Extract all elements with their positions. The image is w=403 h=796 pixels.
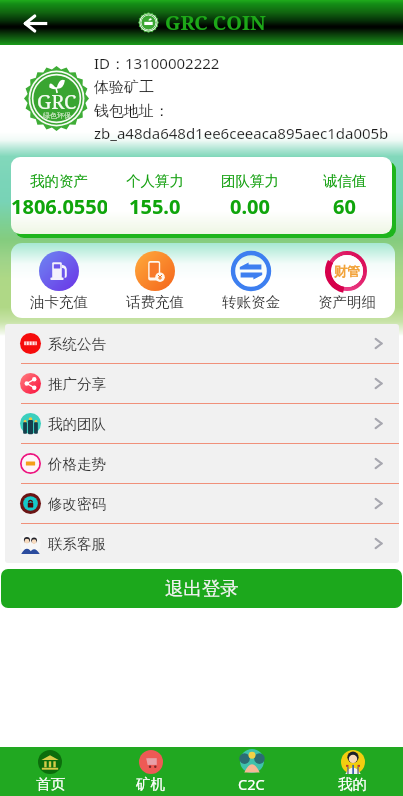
staticText: 个人算力 xyxy=(126,172,184,190)
button[interactable]: 转账资金 xyxy=(203,243,299,318)
staticText: ID：13100002222 xyxy=(94,53,220,73)
staticText: 绿色环保 xyxy=(43,111,71,120)
button[interactable]: 修改密码 xyxy=(5,484,399,523)
staticText: 退出登录 xyxy=(165,577,239,600)
button[interactable]: C2C xyxy=(201,747,302,796)
staticText: 我的资产 xyxy=(30,172,88,190)
staticText: zb_a48da648d1ee6ceeaca895aec1da005b xyxy=(94,123,389,141)
staticText: 钱包地址： xyxy=(94,102,169,121)
staticText: GRC xyxy=(37,88,77,115)
staticText: 首页 xyxy=(36,775,65,793)
button[interactable]: 话费充值 xyxy=(107,243,203,318)
button[interactable]: 油卡充值 xyxy=(11,243,107,318)
staticText: 体验矿工 xyxy=(94,78,154,97)
button[interactable]: 退出登录 xyxy=(1,569,402,608)
staticText: 价格走势 xyxy=(48,455,106,473)
button[interactable]: 价格走势 xyxy=(5,444,399,483)
staticText: 我的团队 xyxy=(48,415,106,433)
staticText: 系统公告 xyxy=(48,335,106,353)
staticText: 团队算力 xyxy=(221,172,279,190)
staticText: 1806.0550 xyxy=(11,193,107,220)
staticText: 诚信值 xyxy=(323,172,367,190)
button[interactable]: 推广分享 xyxy=(5,364,399,403)
staticText: 修改密码 xyxy=(48,495,106,513)
button[interactable]: Back xyxy=(14,2,56,44)
staticText: 资产明细 xyxy=(318,293,376,311)
button[interactable]: 联系客服 xyxy=(5,524,399,563)
staticText: 60 xyxy=(333,193,356,220)
staticText: 转账资金 xyxy=(222,293,280,311)
staticText: GRC COIN xyxy=(165,9,266,36)
staticText: 油卡充值 xyxy=(30,293,88,311)
staticText: 财管 xyxy=(334,263,360,279)
staticText: 我的 xyxy=(338,775,367,793)
staticText: 话费充值 xyxy=(126,293,184,311)
button[interactable]: 系统公告 xyxy=(5,324,399,363)
button[interactable]: 我的 xyxy=(302,747,403,796)
staticText: 155.0 xyxy=(129,193,181,220)
staticText: C2C xyxy=(238,774,265,794)
staticText: 矿机 xyxy=(136,775,165,793)
button[interactable]: 我的团队 xyxy=(5,404,399,443)
button[interactable]: 首页 xyxy=(0,747,100,796)
button[interactable]: 财管 xyxy=(299,243,395,318)
staticText: 推广分享 xyxy=(48,375,106,393)
button[interactable]: 矿机 xyxy=(100,747,201,796)
staticText: 联系客服 xyxy=(48,535,106,553)
staticText: 0.00 xyxy=(230,193,270,220)
